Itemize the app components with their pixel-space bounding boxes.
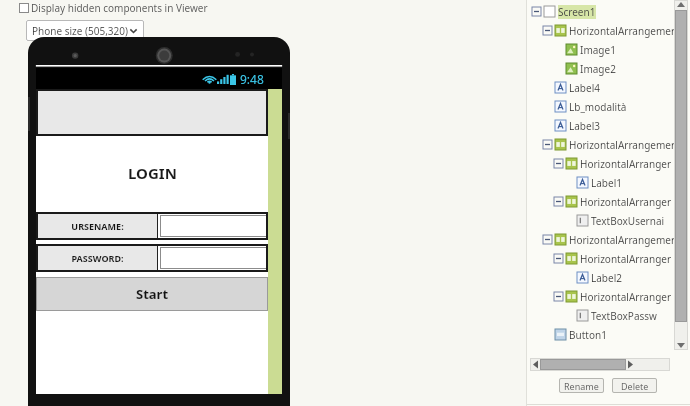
button[interactable]: Lb_modalità bbox=[543, 97, 690, 116]
button[interactable]: Label4 bbox=[543, 78, 690, 97]
staticText: Image2 bbox=[580, 62, 616, 76]
staticText: Label4 bbox=[569, 81, 600, 95]
button[interactable]: HorizontalArranger bbox=[554, 287, 690, 306]
staticText: Button1 bbox=[569, 328, 607, 342]
button[interactable] bbox=[160, 215, 267, 237]
button[interactable] bbox=[160, 247, 267, 269]
staticText: HorizontalArranger bbox=[580, 290, 672, 304]
button[interactable]: Image2 bbox=[554, 59, 690, 78]
button[interactable]: Rename bbox=[559, 378, 604, 393]
staticText: 9:48 bbox=[240, 71, 264, 87]
button[interactable]: HorizontalArranger bbox=[554, 154, 690, 173]
button[interactable]: PASSWORD: bbox=[37, 245, 158, 271]
button[interactable]: Start bbox=[36, 277, 268, 311]
button[interactable]: HorizontalArrangemer bbox=[543, 230, 690, 249]
staticText: Delete bbox=[621, 380, 649, 392]
button[interactable]: HorizontalArrangemer bbox=[543, 135, 690, 154]
button[interactable]: Screen1 bbox=[532, 2, 690, 21]
staticText: HorizontalArranger bbox=[580, 252, 672, 266]
staticText: HorizontalArrangemer bbox=[569, 24, 676, 38]
button[interactable]: HorizontalArrangemer bbox=[543, 21, 690, 40]
button[interactable]: Scroll tree bbox=[674, 0, 688, 350]
button[interactable]: Label2 bbox=[565, 268, 690, 287]
staticText: Label2 bbox=[591, 271, 622, 285]
button[interactable]: TextBoxPassw bbox=[565, 306, 690, 325]
staticText: Image1 bbox=[580, 43, 616, 57]
button[interactable]: HorizontalArranger bbox=[554, 249, 690, 268]
button[interactable]: HorizontalArranger bbox=[554, 192, 690, 211]
staticText: HorizontalArranger bbox=[580, 157, 672, 171]
button[interactable]: Label3 bbox=[543, 116, 690, 135]
button[interactable]: Delete bbox=[612, 378, 657, 393]
staticText: HorizontalArrangemer bbox=[569, 233, 676, 247]
staticText: Phone size (505,320) bbox=[32, 24, 129, 38]
button[interactable]: Image1 bbox=[554, 40, 690, 59]
staticText: Screen1 bbox=[558, 5, 596, 19]
staticText: Lb_modalità bbox=[569, 100, 627, 114]
staticText: Start bbox=[136, 285, 169, 303]
button[interactable]: TextBoxUsernai bbox=[565, 211, 690, 230]
staticText: Rename bbox=[564, 380, 599, 392]
button[interactable]: URSENAME: bbox=[37, 213, 158, 239]
staticText: Display hidden components in Viewer bbox=[31, 1, 208, 15]
staticText: TextBoxUsernai bbox=[591, 214, 665, 228]
button[interactable]: Label1 bbox=[565, 173, 690, 192]
button[interactable]: Button1 bbox=[543, 325, 690, 344]
staticText: PASSWORD: bbox=[71, 252, 124, 264]
button[interactable]: Display hidden components in Viewer bbox=[18, 0, 209, 16]
staticText: HorizontalArranger bbox=[580, 195, 672, 209]
button[interactable]: Scroll horizontally bbox=[530, 358, 670, 371]
staticText: URSENAME: bbox=[71, 220, 124, 232]
staticText: LOGIN bbox=[128, 163, 177, 183]
staticText: HorizontalArrangemer bbox=[569, 138, 676, 152]
staticText: Label1 bbox=[591, 176, 622, 190]
button[interactable]: Phone size (505,320) bbox=[26, 20, 144, 41]
staticText: TextBoxPassw bbox=[591, 309, 657, 323]
staticText: Label3 bbox=[569, 119, 600, 133]
